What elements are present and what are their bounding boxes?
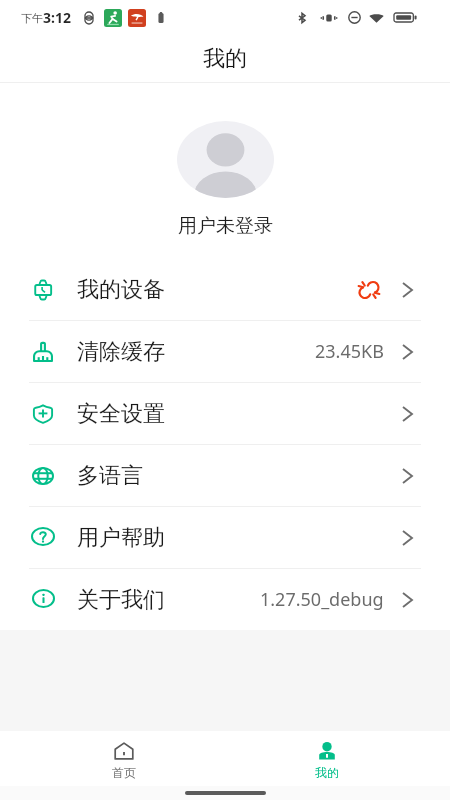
- button[interactable]: 多语言: [0, 445, 450, 506]
- staticText: 1.27.50_debug: [260, 587, 384, 612]
- staticText: 多语言: [77, 462, 143, 490]
- staticText: 3:12: [43, 8, 71, 27]
- staticText: 我的: [203, 45, 247, 73]
- button[interactable]: 关于我们: [0, 569, 450, 630]
- button[interactable]: 清除缓存: [0, 321, 450, 382]
- staticText: 我的: [315, 765, 339, 780]
- staticText: 安全设置: [77, 400, 165, 428]
- staticText: 我的设备: [77, 276, 165, 304]
- staticText: 关于我们: [77, 586, 165, 614]
- staticText: 用户未登录: [178, 214, 273, 238]
- button[interactable]: 我的: [225, 736, 428, 786]
- button[interactable]: 用户帮助: [0, 507, 450, 568]
- staticText: 23.45KB: [315, 339, 384, 364]
- button[interactable]: 首页: [22, 736, 225, 786]
- button[interactable]: 我的设备: [0, 259, 450, 320]
- other: Disconnected: [358, 281, 380, 299]
- button[interactable]: 安全设置: [0, 383, 450, 444]
- staticText: 用户帮助: [77, 524, 165, 552]
- staticText: 下午: [21, 11, 43, 25]
- staticText: 首页: [112, 765, 136, 780]
- staticText: 清除缓存: [77, 338, 165, 366]
